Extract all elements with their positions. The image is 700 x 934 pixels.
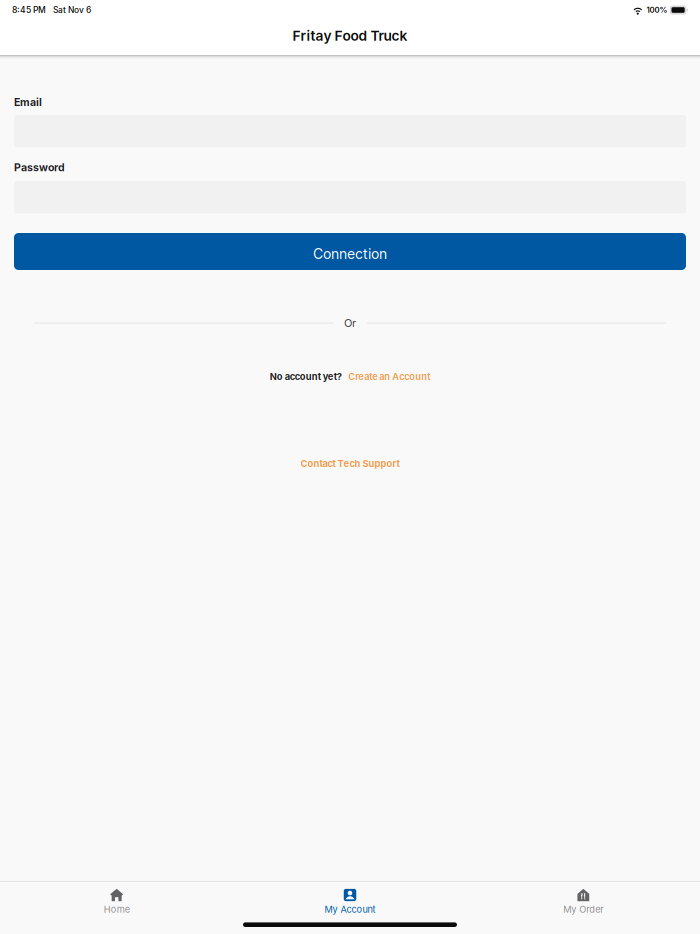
button[interactable]: Contact Tech Support bbox=[300, 457, 399, 469]
button[interactable]: My Account bbox=[233, 882, 467, 917]
button[interactable]: Create an Account bbox=[342, 371, 430, 382]
staticText: Password bbox=[14, 161, 65, 174]
button[interactable]: My Order bbox=[467, 882, 700, 917]
staticText: Connection bbox=[313, 245, 387, 262]
staticText: 100% bbox=[646, 5, 667, 15]
staticText: My Order bbox=[563, 904, 603, 915]
staticText: Or bbox=[344, 316, 356, 330]
staticText: My Account bbox=[324, 904, 375, 915]
button[interactable]: Home bbox=[0, 882, 233, 917]
staticText: No account yet? bbox=[270, 371, 342, 382]
button[interactable]: Connection bbox=[14, 233, 686, 270]
staticText: Create an Account bbox=[348, 371, 430, 382]
staticText: Fritay Food Truck bbox=[292, 27, 407, 44]
staticText: Sat Nov 6 bbox=[53, 5, 91, 15]
staticText: Email bbox=[14, 96, 42, 108]
staticText: Home bbox=[104, 904, 130, 915]
staticText: 8:45 PM bbox=[12, 5, 46, 15]
staticText: Contact Tech Support bbox=[300, 458, 399, 469]
